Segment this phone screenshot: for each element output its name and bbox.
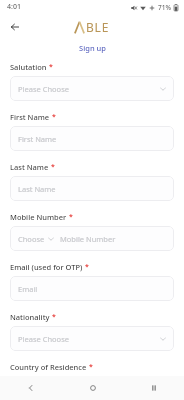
button[interactable]: First Name [10, 126, 174, 151]
staticText: 71% [158, 3, 171, 12]
staticText: Sign up [79, 43, 106, 53]
staticText: Nationality [10, 312, 50, 322]
staticText: First Name [18, 134, 57, 144]
staticText: Email (used for OTP) [10, 262, 83, 272]
staticText: * [49, 62, 53, 72]
staticText: BLE [86, 19, 110, 35]
button[interactable]: Recent apps [123, 376, 184, 400]
button[interactable]: Home [62, 376, 123, 400]
staticText: Mobile Number [60, 234, 116, 244]
staticText: Email [18, 284, 38, 294]
staticText: 4:01 [7, 2, 21, 12]
staticText: Mobile Number [10, 212, 67, 222]
staticText: Choose [18, 234, 45, 244]
staticText: Last Name [18, 184, 56, 194]
button[interactable]: Back [4, 16, 26, 38]
button[interactable]: Please Choose [10, 76, 174, 101]
button[interactable]: Back [0, 376, 62, 400]
staticText: * [89, 362, 93, 372]
staticText: * [51, 162, 55, 172]
button[interactable]: Please Choose [10, 326, 174, 351]
button[interactable]: Choose [10, 226, 174, 251]
button[interactable]: Last Name [10, 176, 174, 201]
staticText: * [52, 312, 56, 322]
staticText: * [69, 212, 73, 222]
staticText: Country of Residence [10, 362, 87, 372]
staticText: Please Choose [18, 84, 69, 94]
button[interactable]: Email [10, 276, 174, 301]
staticText: * [85, 262, 89, 272]
staticText: Please Choose [18, 334, 69, 344]
staticText: * [52, 112, 56, 122]
staticText: Salutation [10, 62, 47, 72]
staticText: First Name [10, 112, 50, 122]
staticText: Last Name [10, 162, 49, 172]
